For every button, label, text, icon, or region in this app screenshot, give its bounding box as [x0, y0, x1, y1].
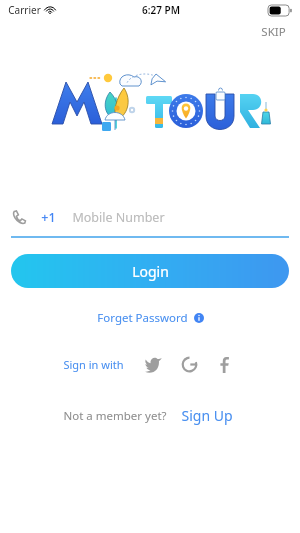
- button[interactable]: Sign in with Google: [176, 351, 202, 377]
- staticText: Sign in with: [63, 357, 124, 372]
- button[interactable]: +1: [11, 204, 289, 230]
- staticText: Mobile Number: [72, 209, 165, 226]
- staticText: SKIP: [261, 24, 286, 40]
- button[interactable]: Sign in with Twitter: [140, 351, 166, 377]
- button[interactable]: Sign in with Facebook: [212, 351, 238, 377]
- button[interactable]: SKIP: [247, 20, 300, 44]
- staticText: Forget Password: [97, 310, 188, 326]
- staticText: 6:27 PM: [142, 3, 180, 17]
- staticText: Not a member yet?: [63, 408, 167, 424]
- button[interactable]: Login: [11, 254, 289, 288]
- button[interactable]: Forget Password: [89, 307, 212, 329]
- staticText: Login: [132, 262, 169, 281]
- button[interactable]: Sign Up: [177, 403, 237, 428]
- staticText: Carrier: [8, 3, 41, 17]
- staticText: +1: [41, 209, 56, 226]
- staticText: Sign Up: [181, 406, 233, 425]
